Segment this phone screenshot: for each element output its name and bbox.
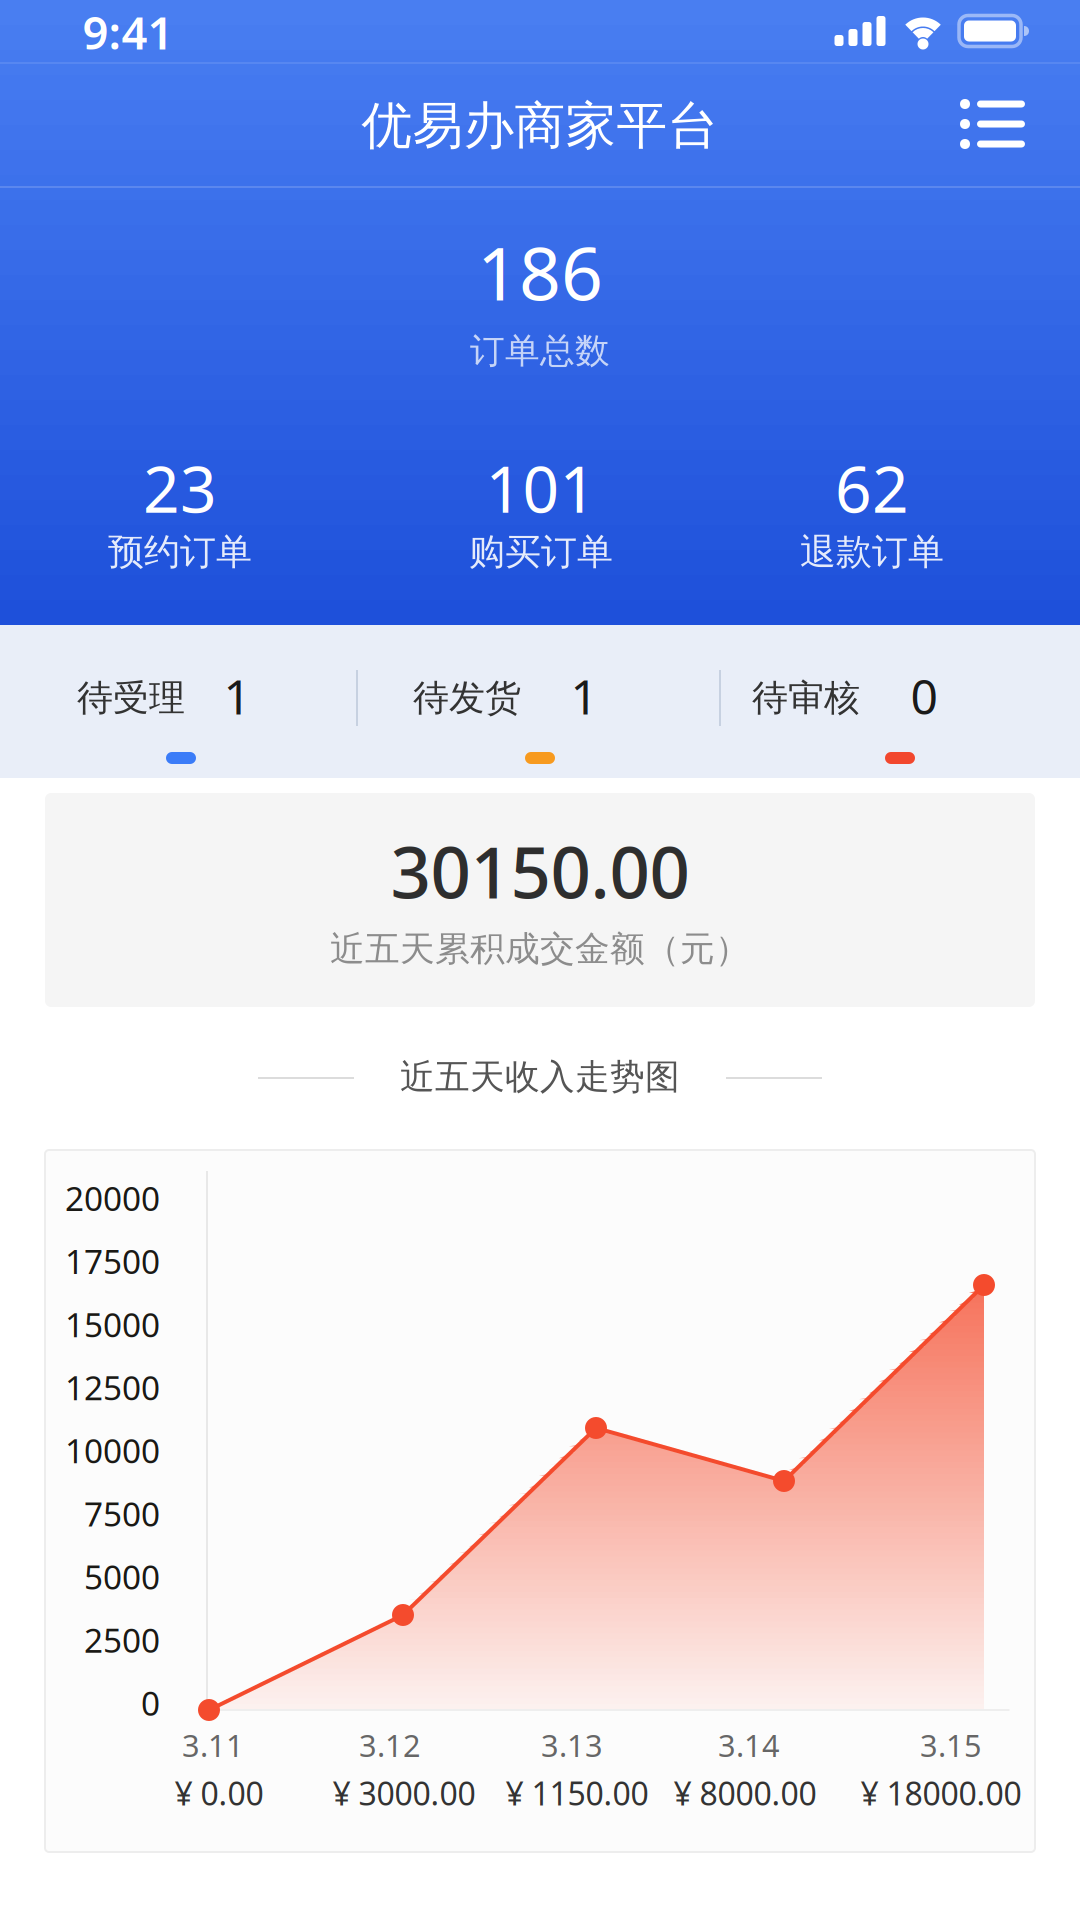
staticText: 3.15 [920, 1725, 982, 1765]
staticText: 购买订单 [469, 530, 613, 574]
staticText: 15000 [65, 1302, 160, 1346]
staticText: 3.13 [541, 1725, 603, 1765]
staticText: 待发货 [413, 676, 521, 720]
staticText: 7500 [84, 1491, 160, 1536]
staticText: 10000 [65, 1428, 160, 1473]
staticText: 0 [141, 1681, 160, 1725]
staticText: 101 [485, 445, 596, 530]
staticText: 3.11 [182, 1725, 244, 1765]
staticText: 17500 [65, 1239, 160, 1283]
staticText: 近五天累积成交金额（元） [330, 928, 750, 970]
staticText: 5000 [84, 1554, 160, 1599]
staticText: ¥ 1150.00 [505, 1772, 648, 1814]
staticText: 待审核 [752, 676, 860, 720]
staticText: 23 [143, 445, 217, 530]
staticText: 退款订单 [800, 530, 944, 574]
button[interactable]: 待审核 [730, 625, 1070, 778]
staticText: 待受理 [77, 676, 185, 720]
staticText: 3.14 [718, 1725, 780, 1765]
button[interactable]: 待受理 [11, 625, 351, 778]
staticText: 3.12 [359, 1725, 421, 1765]
staticText: 优易办商家平台 [361, 95, 718, 157]
staticText: 2500 [84, 1618, 160, 1662]
staticText: 20000 [65, 1176, 160, 1220]
staticText: 62 [835, 445, 909, 530]
staticText: 30150.00 [390, 824, 689, 918]
staticText: ¥ 8000.00 [673, 1772, 816, 1814]
staticText: 0 [910, 664, 937, 728]
staticText: 1 [223, 664, 250, 728]
staticText: 186 [477, 223, 603, 321]
staticText: ¥ 0.00 [174, 1772, 263, 1814]
staticText: 订单总数 [470, 330, 610, 372]
staticText: 9:41 [82, 2, 173, 62]
staticText: ¥ 3000.00 [332, 1772, 475, 1814]
staticText: ¥ 18000.00 [860, 1772, 1021, 1814]
staticText: 近五天收入走势图 [400, 1056, 680, 1098]
button[interactable]: 待发货 [370, 625, 710, 778]
staticText: 12500 [65, 1365, 160, 1409]
staticText: 预约订单 [108, 530, 252, 574]
staticText: 1 [570, 664, 597, 728]
button[interactable]: Menu [957, 84, 1033, 164]
